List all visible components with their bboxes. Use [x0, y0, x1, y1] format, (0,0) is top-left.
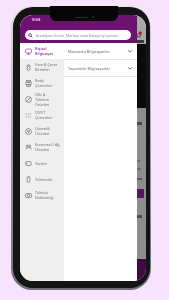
button[interactable]: Gsm & Çevre Birimleri	[20, 59, 64, 75]
staticText: Kişisel Bilgisayar	[35, 46, 54, 56]
staticText: Kurumsal / Ağ Ürünleri	[35, 142, 60, 152]
staticText: Masaüstü Bilgisayarlar	[68, 49, 127, 54]
staticText: Telefonlar	[35, 177, 53, 182]
staticText: Aradığınız Ürünü, Markayı veya Kategoriy…	[36, 33, 119, 38]
staticText: Yazılım	[35, 161, 48, 166]
staticText: Tüketici Elektroniği	[35, 190, 54, 200]
button[interactable]: Kişisel Bilgisayar	[20, 43, 64, 59]
staticText: Ofis & Tüketim Ürünleri	[35, 92, 50, 107]
button[interactable]: Masaüstü Bilgisayarlar	[64, 43, 137, 59]
staticText: OSY/T Çözümleri	[35, 110, 53, 120]
button[interactable]: Taşınabilir Bilgisayarlar	[64, 60, 137, 76]
button[interactable]: Tüketici Elektroniği	[20, 187, 64, 203]
button[interactable]: Ofis & Tüketim Ürünleri	[20, 91, 64, 107]
staticText: Taşınabilir Bilgisayarlar	[68, 66, 127, 71]
button[interactable]: Güvenlik Ürünleri	[20, 123, 64, 139]
staticText: 9:24	[32, 17, 41, 23]
staticText: Baskı Çözümleri	[35, 78, 53, 88]
button[interactable]: Yazılım	[20, 155, 64, 171]
staticText: Güvenlik Ürünleri	[35, 126, 51, 136]
button[interactable]: Aradığınız Ürünü, Markayı veya Kategoriy…	[25, 30, 131, 40]
button[interactable]: Telefonlar	[20, 171, 64, 187]
button[interactable]: Baskı Çözümleri	[20, 75, 64, 91]
button[interactable]: Kurumsal / Ağ Ürünleri	[20, 139, 64, 155]
button[interactable]: Sepet	[133, 30, 142, 39]
button[interactable]: OSY/T Çözümleri	[20, 107, 64, 123]
staticText: Gsm & Çevre Birimleri	[35, 62, 58, 72]
